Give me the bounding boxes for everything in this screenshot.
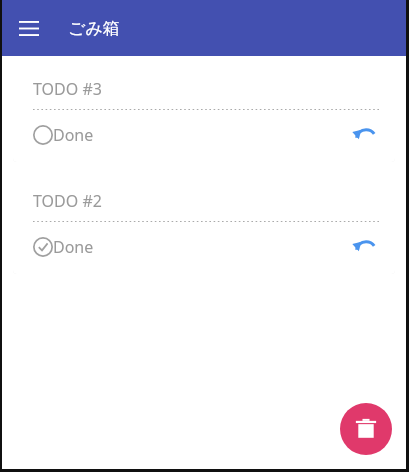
- button[interactable]: Open navigation menu: [12, 11, 46, 45]
- staticText: Done: [53, 236, 94, 258]
- staticText: TODO #3: [33, 78, 102, 100]
- staticText: ごみ箱: [68, 18, 120, 39]
- button[interactable]: TODO #2: [13, 172, 395, 274]
- button[interactable]: Done: [33, 232, 94, 262]
- button[interactable]: TODO #3: [13, 60, 395, 162]
- staticText: TODO #2: [33, 190, 102, 212]
- button[interactable]: Done: [33, 120, 94, 150]
- button[interactable]: Restore: [347, 118, 381, 152]
- button[interactable]: Empty trash: [340, 403, 392, 455]
- button[interactable]: Restore: [347, 230, 381, 264]
- staticText: Done: [53, 124, 94, 146]
